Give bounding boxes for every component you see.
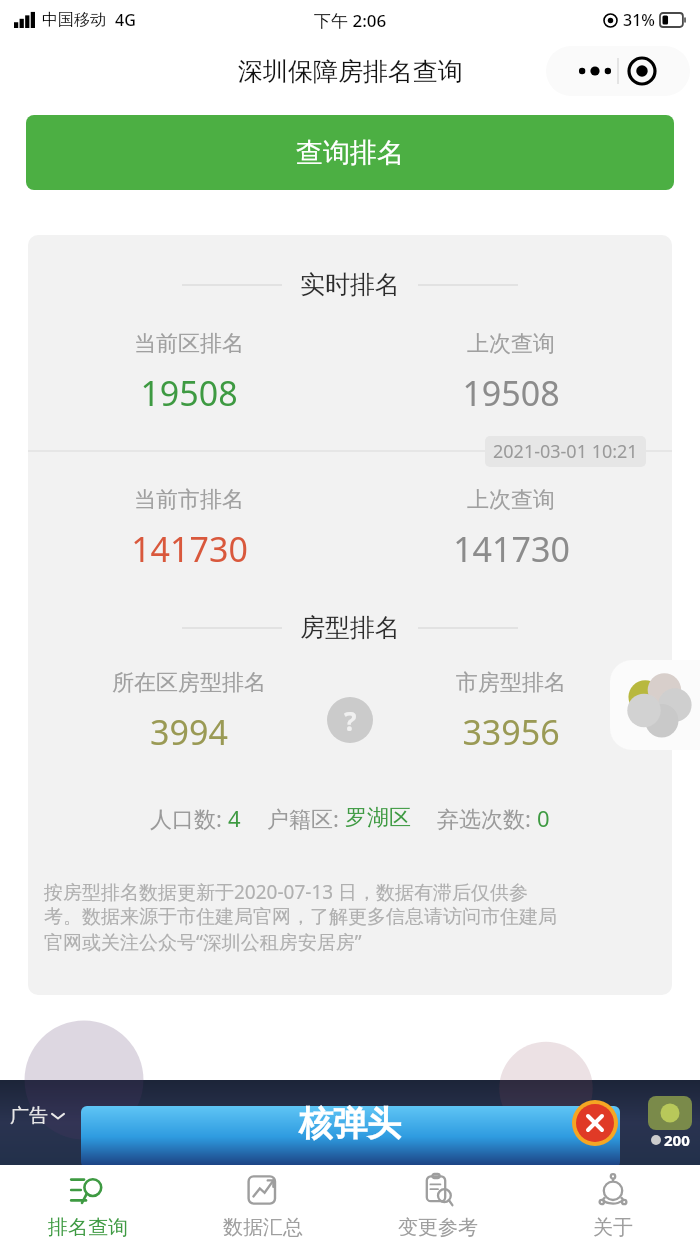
button[interactable]: 上次查询 [350, 486, 672, 572]
staticText: 200 [664, 1130, 690, 1150]
staticText: 31% [623, 9, 655, 31]
staticText: 考。数据来源于市住建局官网，了解更多信息请访问市住建局 [44, 905, 557, 929]
button[interactable]: 变更参考 [350, 1165, 525, 1244]
staticText: 上次查询 [467, 330, 555, 358]
button[interactable]: 上次查询 [350, 330, 672, 416]
staticText: ? [344, 703, 357, 738]
staticText: 变更参考 [398, 1215, 478, 1240]
staticText: 官网或关注公众号“深圳公租房安居房” [44, 929, 362, 955]
staticText: 33956 [462, 709, 560, 755]
button[interactable]: Help [327, 697, 373, 743]
staticText: 141730 [453, 526, 570, 572]
button[interactable]: 数据汇总 [175, 1165, 350, 1244]
staticText: 实时排名 [300, 269, 400, 300]
staticText: 户籍区: [267, 803, 345, 833]
staticText: 141730 [131, 526, 248, 572]
staticText: 4 [228, 803, 241, 833]
staticText: 所在区房型排名 [112, 669, 266, 697]
staticText: 罗湖区 [345, 804, 411, 832]
staticText: 深圳保障房排名查询 [238, 56, 463, 87]
button[interactable]: Close ad [572, 1100, 618, 1146]
staticText: 当前区排名 [134, 330, 244, 358]
button[interactable]: 查询排名 [26, 115, 674, 190]
staticText: 中国移动 [42, 10, 106, 30]
staticText: 关于 [593, 1215, 633, 1240]
button[interactable]: 当前区排名 [28, 330, 350, 416]
staticText: 当前市排名 [134, 486, 244, 514]
staticText: 上次查询 [467, 486, 555, 514]
staticText: 排名查询 [48, 1215, 128, 1240]
staticText: 4G [115, 9, 136, 31]
staticText: 核弹头 [299, 1102, 401, 1145]
button[interactable]: 所在区房型排名 [28, 669, 350, 755]
button[interactable]: More and close [546, 46, 690, 96]
staticText: 广告 [10, 1104, 48, 1128]
staticText: 下午 2:06 [314, 9, 387, 32]
staticText: 0 [537, 803, 550, 833]
button[interactable]: 排名查询 [0, 1165, 175, 1244]
staticText: 房型排名 [300, 612, 400, 643]
staticText: 查询排名 [296, 136, 404, 170]
button[interactable]: 核弹头 [0, 1080, 700, 1165]
button[interactable]: Shortcut [610, 660, 700, 750]
staticText: 市房型排名 [456, 669, 566, 697]
button[interactable]: 关于 [525, 1165, 700, 1244]
button[interactable]: 市房型排名 [350, 669, 672, 755]
staticText: 按房型排名数据更新于2020-07-13 日，数据有滞后仅供参 [44, 879, 529, 905]
staticText: 弃选次数: [437, 803, 537, 833]
staticText: 2021-03-01 10:21 [493, 439, 638, 464]
staticText: 3994 [150, 709, 228, 755]
staticText: 19508 [140, 370, 238, 416]
staticText: 19508 [462, 370, 560, 416]
staticText: 数据汇总 [223, 1215, 303, 1240]
button[interactable]: 当前市排名 [28, 486, 350, 572]
staticText: 人口数: [150, 803, 228, 833]
